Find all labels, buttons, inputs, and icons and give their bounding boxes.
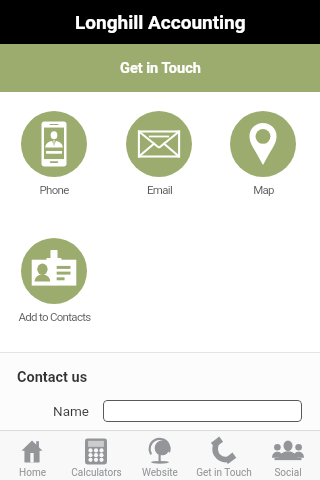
staticText: Calculators xyxy=(71,467,122,479)
staticText: Email xyxy=(147,183,172,196)
staticText: Get in Touch xyxy=(196,467,252,479)
button[interactable]: Website xyxy=(128,431,192,480)
staticText: Website xyxy=(142,467,178,479)
staticText: Contact us xyxy=(17,369,88,386)
button[interactable] xyxy=(103,400,302,422)
staticText: Social xyxy=(274,467,302,479)
button[interactable]: Phone xyxy=(0,111,114,196)
staticText: Longhill Accounting xyxy=(75,11,246,33)
staticText: Map xyxy=(253,183,274,196)
staticText: Name xyxy=(0,403,89,419)
button[interactable]: Home xyxy=(0,431,64,480)
button[interactable]: Email xyxy=(99,111,219,196)
button[interactable]: Get in Touch xyxy=(0,44,320,92)
staticText: Home xyxy=(19,467,46,479)
staticText: Phone xyxy=(39,183,69,196)
button[interactable]: Add to Contacts xyxy=(0,238,114,323)
staticText: Get in Touch xyxy=(120,60,201,77)
button[interactable]: Calculators xyxy=(64,431,128,480)
button[interactable]: Map xyxy=(203,111,320,196)
button[interactable]: Get in Touch xyxy=(192,431,256,480)
staticText: Add to Contacts xyxy=(18,310,91,323)
button[interactable]: Social xyxy=(256,431,320,480)
